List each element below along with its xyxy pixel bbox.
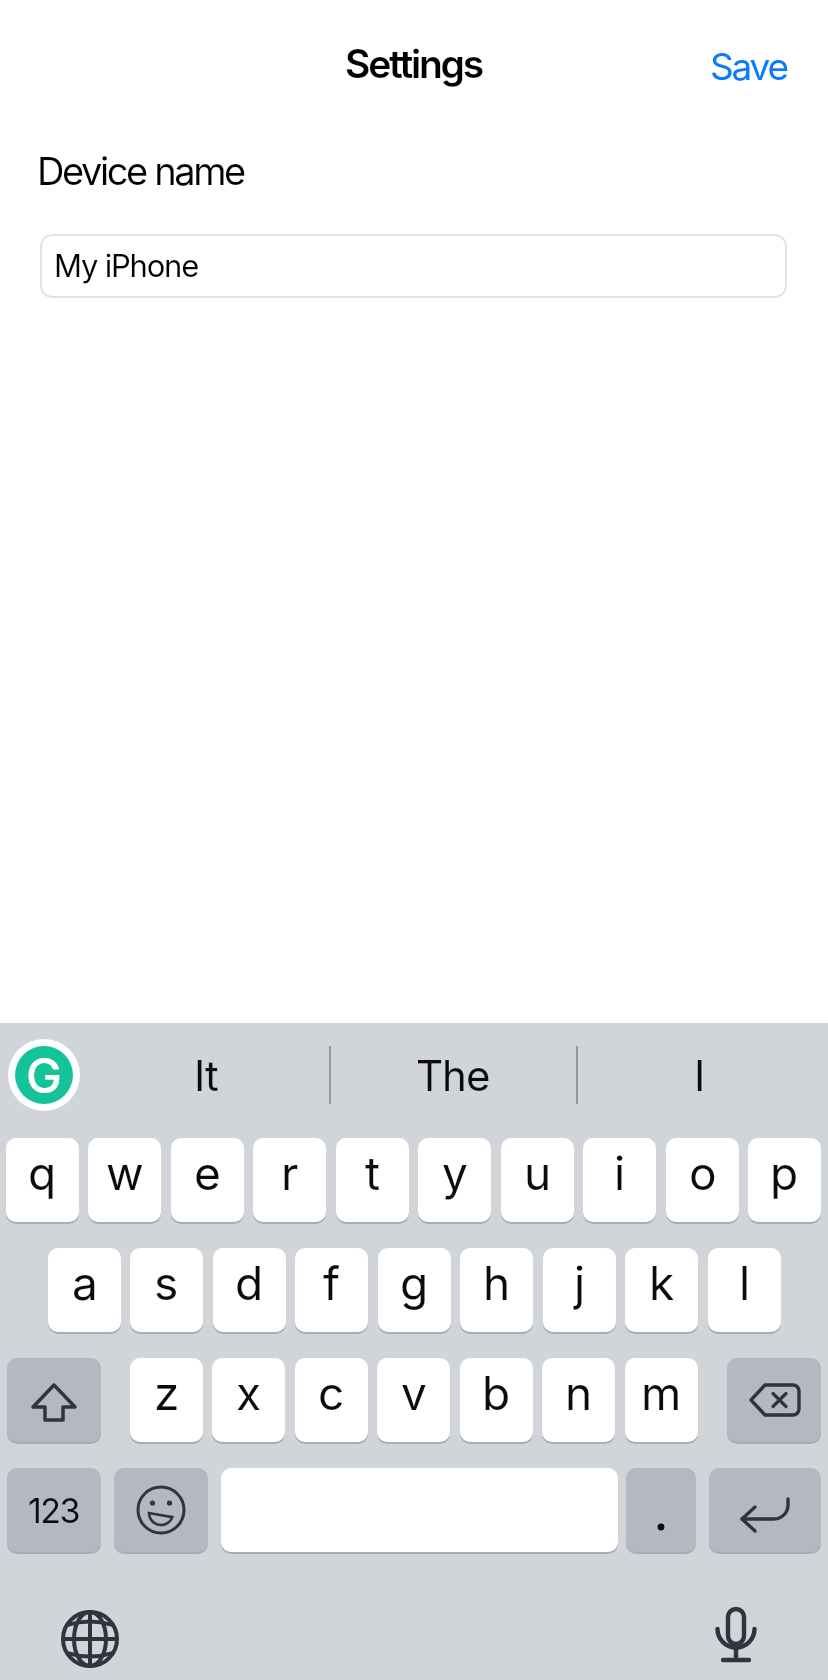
button[interactable]: v	[377, 1358, 450, 1442]
button[interactable]: h	[460, 1248, 533, 1332]
staticText: k	[649, 1255, 675, 1311]
staticText: y	[442, 1145, 468, 1201]
staticText: h	[483, 1255, 511, 1311]
button[interactable]: c	[295, 1358, 368, 1442]
button[interactable]: n	[542, 1358, 615, 1442]
staticText: r	[281, 1145, 299, 1201]
staticText: t	[365, 1145, 381, 1201]
button[interactable]: d	[213, 1248, 286, 1332]
button[interactable]: 123	[7, 1468, 101, 1552]
button[interactable]: z	[130, 1358, 203, 1442]
button[interactable]: m	[625, 1358, 698, 1442]
button[interactable]: Save	[710, 44, 787, 89]
button[interactable]: I	[578, 1040, 821, 1110]
staticText: Save	[710, 44, 787, 89]
staticText: l	[739, 1255, 751, 1311]
staticText: x	[236, 1365, 262, 1421]
staticText: d	[235, 1255, 264, 1311]
staticText: The	[416, 1050, 490, 1101]
staticText: u	[524, 1145, 552, 1201]
button[interactable]: f	[295, 1248, 368, 1332]
staticText: Settings	[345, 40, 483, 87]
staticText: b	[482, 1365, 511, 1421]
staticText: i	[614, 1145, 626, 1201]
button[interactable]	[709, 1468, 821, 1552]
button[interactable]: r	[253, 1138, 326, 1222]
button[interactable]	[56, 1605, 124, 1673]
button[interactable]: w	[88, 1138, 161, 1222]
staticText: c	[318, 1365, 345, 1421]
staticText: s	[154, 1255, 179, 1311]
button[interactable]: q	[6, 1138, 79, 1222]
button[interactable]: G	[8, 1039, 80, 1111]
button[interactable]: y	[418, 1138, 491, 1222]
button[interactable]: u	[501, 1138, 574, 1222]
staticText: Device name	[37, 148, 244, 194]
staticText: My iPhone	[54, 247, 199, 285]
button[interactable]: s	[130, 1248, 203, 1332]
button[interactable]: k	[625, 1248, 698, 1332]
staticText: p	[770, 1145, 799, 1201]
button[interactable]: It	[84, 1040, 327, 1110]
button[interactable]: i	[583, 1138, 656, 1222]
button[interactable]: a	[48, 1248, 121, 1332]
button[interactable]: j	[543, 1248, 616, 1332]
button[interactable]	[7, 1358, 101, 1442]
button[interactable]	[114, 1468, 208, 1552]
staticText: f	[323, 1255, 341, 1311]
staticText: o	[689, 1145, 717, 1201]
button[interactable]: My iPhone	[40, 234, 787, 298]
button[interactable]: t	[336, 1138, 409, 1222]
staticText: 123	[28, 1490, 80, 1531]
staticText: I	[694, 1050, 705, 1101]
staticText: n	[565, 1365, 593, 1421]
staticText: v	[401, 1365, 427, 1421]
staticText: e	[194, 1145, 221, 1201]
button[interactable]: l	[708, 1248, 781, 1332]
button[interactable]: e	[171, 1138, 244, 1222]
staticText: w	[106, 1145, 144, 1201]
button[interactable]: b	[460, 1358, 533, 1442]
button[interactable]: The	[331, 1040, 574, 1110]
staticText: m	[641, 1365, 682, 1421]
staticText: z	[154, 1365, 180, 1421]
staticText: It	[194, 1050, 218, 1101]
staticText: g	[400, 1255, 429, 1311]
staticText: a	[72, 1255, 98, 1311]
button[interactable]	[727, 1358, 821, 1442]
button[interactable]: p	[748, 1138, 821, 1222]
staticText: G	[26, 1046, 62, 1104]
button[interactable]	[626, 1468, 696, 1552]
button[interactable]: x	[212, 1358, 285, 1442]
button[interactable]	[702, 1596, 770, 1672]
staticText: j	[574, 1255, 586, 1311]
button[interactable]: o	[666, 1138, 739, 1222]
button[interactable]: g	[378, 1248, 451, 1332]
staticText: q	[28, 1145, 57, 1201]
